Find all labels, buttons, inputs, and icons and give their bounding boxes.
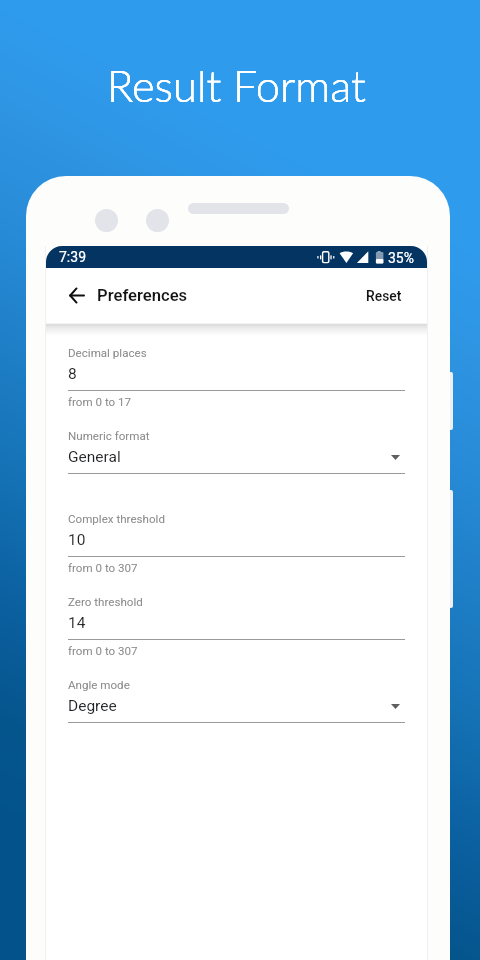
staticText: Angle mode xyxy=(68,678,130,692)
staticText: 8 xyxy=(68,365,77,383)
staticText: Result Format xyxy=(107,59,366,111)
button[interactable]: Zero threshold xyxy=(46,590,427,673)
staticText: Zero threshold xyxy=(68,595,143,609)
staticText: from 0 to 307 xyxy=(68,644,138,658)
button[interactable]: Reset xyxy=(356,280,412,312)
staticText: from 0 to 17 xyxy=(68,395,132,409)
button[interactable]: Complex threshold xyxy=(46,507,427,590)
staticText: Preferences xyxy=(97,286,188,305)
staticText: Reset xyxy=(366,288,402,304)
staticText: Numeric format xyxy=(68,429,150,443)
staticText: 14 xyxy=(68,614,86,632)
staticText: Degree xyxy=(68,697,117,715)
button[interactable]: Decimal places xyxy=(46,341,427,424)
button[interactable]: Back xyxy=(56,274,98,316)
staticText: Result Format xyxy=(107,59,366,111)
staticText: Decimal places xyxy=(68,346,147,360)
staticText: General xyxy=(68,448,121,466)
staticText: Complex threshold xyxy=(68,512,165,526)
button[interactable]: Numeric format xyxy=(46,424,427,507)
staticText: 10 xyxy=(68,531,86,549)
button[interactable]: Angle mode xyxy=(46,673,427,756)
staticText: from 0 to 307 xyxy=(68,561,138,575)
staticText: 7:39 xyxy=(59,249,86,265)
staticText: 35% xyxy=(388,250,414,266)
